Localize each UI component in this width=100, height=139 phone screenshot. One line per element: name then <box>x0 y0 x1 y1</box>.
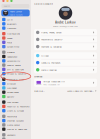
staticText: Wallpaper <box>7 86 17 89</box>
button[interactable]: Password & Security <box>34 36 97 43</box>
staticText: Notifications <box>7 32 20 35</box>
staticText: Name, Phone, Email <box>41 31 62 34</box>
staticText: Password & Security <box>41 38 62 41</box>
button[interactable]: Users & Groups <box>0 108 31 113</box>
staticText: Search <box>4 5 10 7</box>
button[interactable]: Privacy & Security <box>0 71 31 76</box>
button[interactable]: Desktop & Dock <box>0 77 31 81</box>
staticText: This MacBook Air <box>43 83 60 86</box>
staticText: Apple Account <box>10 13 23 16</box>
staticText: Virtual MacBook Air <box>43 80 65 83</box>
button[interactable]: Siri & Spotlight <box>0 67 31 71</box>
staticText: Payment & Shipping <box>41 45 61 48</box>
button[interactable]: Wallet & Apple Pay <box>0 127 31 131</box>
button[interactable]: Displays <box>0 81 31 86</box>
staticText: Andre Larkov <box>10 10 22 13</box>
staticText: General <box>7 51 15 54</box>
staticText: Battery <box>7 95 14 98</box>
staticText: Displays <box>7 82 16 85</box>
button[interactable]: Screen Time <box>0 44 31 49</box>
button[interactable]: Wallpaper <box>0 86 31 90</box>
staticText: Wi-Fi <box>7 18 13 21</box>
button[interactable]: Control Center <box>0 63 31 67</box>
staticText: andre.larkov@icloud.com <box>53 25 78 27</box>
staticText: Passwords <box>7 115 17 118</box>
staticText: Users & Groups <box>7 109 24 112</box>
staticText: Family Sharing <box>41 68 56 71</box>
button[interactable]: Trackpad <box>0 137 31 139</box>
button[interactable]: Notifications <box>0 32 31 36</box>
button[interactable]: Name, Phone, Email <box>34 29 97 36</box>
staticText: Appearance <box>7 55 17 58</box>
button[interactable]: Focus <box>0 40 31 44</box>
staticText: Focus <box>7 41 12 44</box>
button[interactable]: Sign Out… <box>34 89 45 93</box>
staticText: Screen Saver <box>7 91 19 94</box>
staticText: Siri & Spotlight <box>7 68 24 71</box>
button[interactable]: More Apple ID Settings… <box>67 89 97 93</box>
button[interactable]: General <box>0 50 31 54</box>
staticText: Accessibility <box>7 59 20 62</box>
staticText: Internet Accounts <box>7 119 24 122</box>
button[interactable]: Payment & Shipping <box>34 43 97 50</box>
staticText: iCloud <box>41 54 48 57</box>
staticText: Control Center <box>7 64 21 67</box>
staticText: Keyboard <box>7 133 15 136</box>
button[interactable]: Media & Purchases <box>34 59 97 66</box>
button[interactable]: Family Sharing <box>34 66 97 73</box>
staticText: Media & Purchases <box>41 61 60 64</box>
staticText: Devices <box>34 75 42 78</box>
button[interactable]: Network <box>0 26 31 30</box>
staticText: Lock Screen <box>7 101 18 104</box>
button[interactable]: Keyboard <box>0 133 31 137</box>
staticText: Apple Account <box>34 2 53 5</box>
button[interactable]: Screen Saver <box>0 90 31 94</box>
button[interactable]: Lock Screen <box>0 100 31 104</box>
staticText: Network <box>7 27 16 30</box>
button[interactable]: Internet Accounts <box>0 118 31 123</box>
staticText: Touch ID & Password <box>7 105 29 108</box>
button[interactable]: Wi-Fi <box>0 17 31 22</box>
staticText: Wallet & Apple Pay <box>7 128 27 131</box>
staticText: Sign Out… <box>34 89 45 92</box>
button[interactable]: Andre Larkov <box>1 10 30 16</box>
staticText: Game Center <box>7 123 20 126</box>
button[interactable]: Bluetooth <box>0 22 31 26</box>
button[interactable]: Sound <box>0 36 31 40</box>
staticText: Andre Larkov <box>55 20 76 24</box>
button[interactable]: iCloud <box>34 52 97 59</box>
button[interactable]: Passwords <box>0 114 31 118</box>
staticText: More Apple ID Settings… <box>67 89 94 92</box>
button[interactable]: Battery <box>0 94 31 99</box>
staticText: Privacy & Security <box>7 72 26 75</box>
button[interactable]: Game Center <box>0 123 31 127</box>
button[interactable]: Accessibility <box>0 59 31 63</box>
staticText: Sound <box>7 36 12 40</box>
button[interactable]: Touch ID & Password <box>0 104 31 108</box>
staticText: Bluetooth <box>7 22 16 25</box>
button[interactable]: Virtual MacBook Air <box>34 79 97 87</box>
staticText: Desktop & Dock <box>7 78 24 81</box>
button[interactable]: Appearance <box>0 54 31 59</box>
staticText: Screen Time <box>7 45 19 48</box>
